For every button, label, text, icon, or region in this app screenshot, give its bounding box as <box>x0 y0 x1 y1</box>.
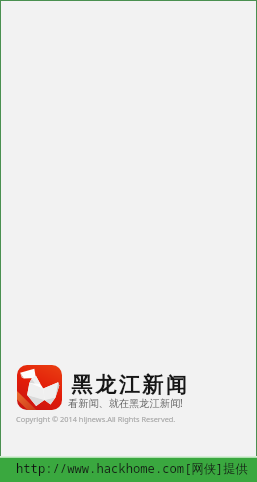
staticText: 看新闻、就在黑龙江新闻! <box>68 396 183 410</box>
button[interactable]: hackhome.com <box>0 456 257 482</box>
button[interactable]: 黑龙江新闻 app icon <box>17 365 186 410</box>
staticText: 黑龙江新闻 <box>70 372 188 398</box>
staticText: Copyright © 2014 hljnews.All Rights Rese… <box>16 414 176 424</box>
other: 黑龙江新闻 app icon <box>17 365 62 410</box>
staticText: http://www.hackhome.com[网侠]提供 <box>16 460 248 477</box>
